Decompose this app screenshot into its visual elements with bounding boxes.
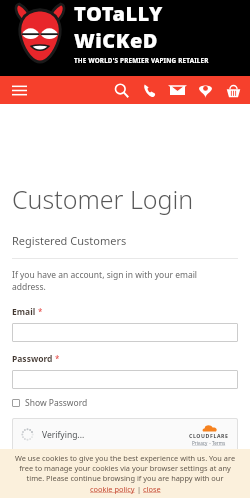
button[interactable]: close [143, 484, 161, 494]
staticText: If you have an account, sign in with you… [12, 269, 198, 293]
staticText: CLOUDFLARE [189, 432, 229, 439]
button[interactable]: Show Password [12, 397, 88, 409]
staticText: Email [12, 306, 36, 318]
button[interactable]: Call us [137, 78, 161, 102]
staticText: Customer Login [12, 182, 194, 216]
button[interactable] [12, 323, 238, 342]
staticText: Terms [212, 440, 226, 446]
staticText: Registered Customers [12, 233, 127, 248]
staticText: Sign In [110, 463, 141, 475]
button[interactable]: Email us [165, 78, 189, 102]
staticText: * [55, 353, 60, 364]
staticText: Password [12, 353, 53, 365]
staticText: Verifying... [42, 429, 85, 441]
staticText: * [38, 306, 43, 317]
button[interactable]: Store locator [193, 78, 217, 102]
staticText: We use cookies to give you the best expe… [10, 453, 240, 483]
button[interactable]: Shopping basket [221, 78, 245, 102]
staticText: Show Password [25, 397, 88, 409]
staticText: cookie policy [90, 484, 135, 494]
button[interactable] [12, 370, 238, 389]
staticText: | [135, 484, 143, 494]
staticText: TOTaLLY WiCKeD [74, 0, 244, 54]
staticText: close [143, 484, 161, 494]
staticText: THE WORLD'S PREMIER VAPING RETAILER [74, 56, 209, 65]
button[interactable]: Search [109, 78, 133, 102]
button[interactable]: Cloudflare Turnstile verification [12, 418, 238, 451]
button[interactable]: Menu [8, 79, 30, 101]
staticText: - [208, 440, 212, 446]
button[interactable]: Sign In [12, 458, 238, 480]
button[interactable]: cookie policy [90, 484, 135, 494]
staticText: Privacy [192, 440, 208, 446]
